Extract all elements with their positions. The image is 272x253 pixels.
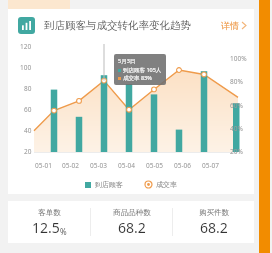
- staticText: 05-04: [118, 161, 135, 170]
- staticText: 12.5: [32, 218, 60, 237]
- staticText: 05-02: [62, 161, 79, 170]
- staticText: 20%: [230, 147, 243, 156]
- staticText: 05-05: [146, 161, 163, 170]
- button[interactable]: 到店顾客与成交转化率变化趋势: [8, 9, 254, 42]
- staticText: 商品品种数: [113, 208, 151, 217]
- staticText: 05-07: [202, 161, 219, 170]
- staticText: 客单数: [38, 208, 61, 217]
- staticText: 40: [24, 126, 32, 135]
- button[interactable]: 商品品种数: [91, 201, 172, 243]
- staticText: %: [60, 226, 67, 237]
- button[interactable]: 购买件数: [173, 201, 254, 243]
- button[interactable]: 客单数: [8, 201, 90, 243]
- staticText: 68.2: [200, 218, 228, 237]
- staticText: 5月3日: [118, 57, 136, 65]
- staticText: 05-06: [174, 161, 191, 170]
- staticText: 100: [20, 63, 32, 72]
- staticText: 60: [24, 105, 32, 114]
- staticText: 到店顾客与成交转化率变化趋势: [44, 19, 191, 32]
- staticText: 到店顾客: [95, 180, 123, 189]
- staticText: 100%: [230, 54, 247, 63]
- staticText: 120: [20, 42, 32, 51]
- staticText: 80: [24, 84, 32, 93]
- staticText: 购买件数: [199, 208, 229, 217]
- staticText: 05-01: [35, 161, 52, 170]
- button[interactable]: 详情: [217, 16, 250, 35]
- staticText: 成交率 83%: [123, 74, 152, 82]
- staticText: 05-03: [90, 161, 107, 170]
- staticText: 详情: [221, 20, 239, 31]
- staticText: 成交率: [156, 180, 177, 189]
- staticText: 68.2: [118, 218, 146, 237]
- staticText: 80%: [230, 77, 243, 86]
- staticText: 60%: [230, 101, 243, 110]
- staticText: 20: [24, 147, 32, 156]
- staticText: 到店顾客 105人: [123, 66, 162, 74]
- staticText: 40%: [230, 124, 243, 133]
